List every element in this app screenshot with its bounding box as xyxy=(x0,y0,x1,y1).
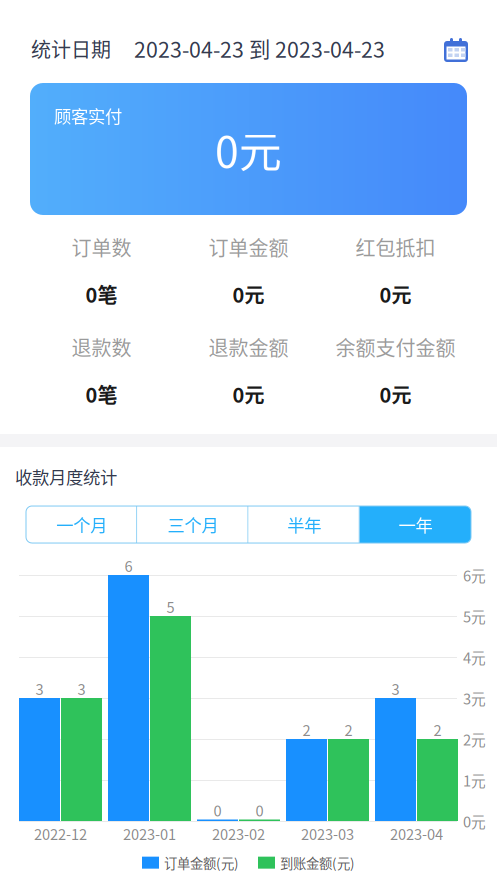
staticText: 到账金额(元) xyxy=(280,853,355,872)
staticText: 6元 xyxy=(463,564,486,586)
staticText: 2023-04-23 到 2023-04-23 xyxy=(134,33,385,64)
staticText: 退款数 xyxy=(71,332,131,361)
staticText: 订单数 xyxy=(71,232,131,261)
staticText: 2 xyxy=(433,719,441,740)
button[interactable]: 一个月 xyxy=(26,506,137,543)
staticText: 2 xyxy=(302,719,310,740)
staticText: 0元 xyxy=(379,279,411,308)
staticText: 半年 xyxy=(287,512,321,537)
staticText: 5元 xyxy=(463,605,486,627)
staticText: 余额支付金额 xyxy=(335,332,455,361)
staticText: 一个月 xyxy=(56,512,107,537)
staticText: 统计日期 xyxy=(31,34,111,63)
staticText: 2023-03 xyxy=(301,823,354,844)
staticText: 6 xyxy=(124,555,132,576)
staticText: 5 xyxy=(166,596,174,617)
staticText: 3 xyxy=(391,678,399,699)
staticText: 2 xyxy=(344,719,352,740)
staticText: 0元 xyxy=(232,379,264,408)
staticText: 0元 xyxy=(232,279,264,308)
staticText: 收款月度统计 xyxy=(15,464,117,489)
staticText: 3 xyxy=(35,678,43,699)
staticText: 1元 xyxy=(463,769,486,791)
button[interactable]: 三个月 xyxy=(137,506,248,543)
staticText: 三个月 xyxy=(167,512,218,537)
staticText: 3元 xyxy=(463,687,486,709)
staticText: 0元 xyxy=(215,118,282,180)
staticText: 2023-04 xyxy=(390,823,443,844)
button[interactable]: 一年 xyxy=(360,506,471,543)
staticText: 一年 xyxy=(398,512,432,537)
staticText: 顾客实付 xyxy=(54,103,122,128)
staticText: 0 xyxy=(213,799,221,821)
staticText: 0元 xyxy=(463,810,486,832)
staticText: 0笔 xyxy=(85,379,117,408)
button[interactable]: 半年 xyxy=(248,506,360,543)
staticText: 退款金额 xyxy=(208,332,288,361)
staticText: 3 xyxy=(77,678,85,699)
staticText: 0 xyxy=(255,799,263,821)
staticText: 4元 xyxy=(463,646,486,668)
staticText: 红包抵扣 xyxy=(355,232,435,261)
staticText: 2022-12 xyxy=(34,823,87,844)
staticText: 0笔 xyxy=(85,279,117,308)
staticText: 0元 xyxy=(379,379,411,408)
button[interactable]: Choose date range xyxy=(444,36,468,60)
staticText: 订单金额(元) xyxy=(164,853,239,872)
staticText: 2元 xyxy=(463,728,486,750)
staticText: 2023-01 xyxy=(123,823,176,844)
staticText: 订单金额 xyxy=(208,232,288,261)
staticText: 2023-02 xyxy=(212,823,265,844)
